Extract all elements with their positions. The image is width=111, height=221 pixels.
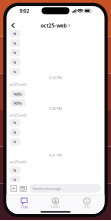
staticText: hello [13,91,21,96]
staticText: hello [13,100,21,105]
staticText: hi [13,168,16,173]
staticText: hi [13,69,16,74]
staticText: hi [13,40,16,46]
staticText: 4:01 PM [48,152,62,158]
button[interactable]: Info [71,198,102,209]
staticText: oct25-web [9,112,26,118]
staticText: Chats [21,205,28,209]
staticText: hi [13,130,16,135]
staticText: 3:28 PM [48,106,62,111]
button[interactable]: Profile [40,198,71,209]
staticText: Send a message... [32,186,63,191]
staticText: hi [13,50,16,55]
button[interactable]: oct25-web [38,18,73,29]
button[interactable]: Chats [8,198,40,209]
staticText: 3:18 PM [48,75,62,80]
staticText: oct25-web [9,81,26,87]
staticText: hi [13,60,16,65]
staticText: oct25-web [40,22,66,29]
staticText: hi [13,139,16,144]
staticText: hi [13,120,16,125]
staticText: Profile [50,205,60,209]
button[interactable]: Apps [10,185,17,192]
button[interactable]: Back [8,18,18,28]
button[interactable]: Send a message... [29,184,100,193]
button[interactable]: Camera [20,185,27,192]
staticText: 9:02 [19,7,29,14]
staticText: oct25-web [9,159,26,164]
staticText: hi [13,177,16,182]
staticText: hi [13,31,16,36]
staticText: Info [84,205,90,209]
